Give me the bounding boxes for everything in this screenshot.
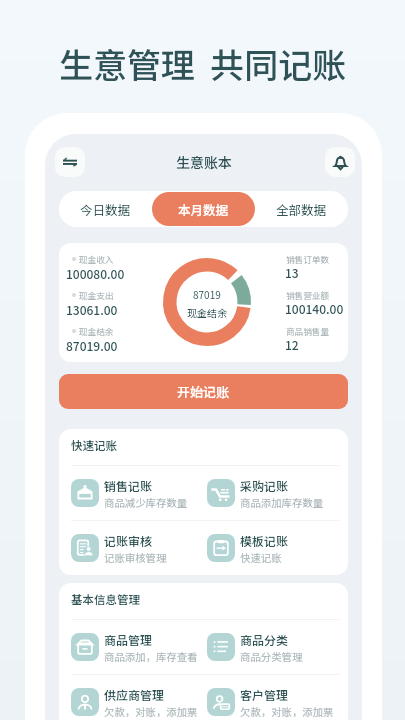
staticText: 商品添加，库存查看: [104, 649, 198, 664]
button[interactable]: 本月数据: [152, 192, 255, 226]
staticText: 现金结余: [187, 305, 227, 319]
staticText: 87019.00: [66, 337, 118, 354]
staticText: 现金支出: [79, 289, 114, 301]
staticText: 现金收入: [79, 253, 114, 265]
staticText: 生意账本: [176, 152, 232, 172]
button[interactable]: 商品分类: [207, 620, 339, 674]
button[interactable]: 记账审核: [71, 521, 203, 575]
staticText: 本月数据: [178, 200, 229, 218]
staticText: 记账审核: [104, 532, 153, 549]
staticText: 12: [285, 336, 299, 353]
staticText: 生意管理 共同记账: [59, 39, 347, 88]
staticText: 商品分类管理: [240, 649, 303, 664]
staticText: 商品管理: [104, 631, 153, 648]
staticText: 采购记账: [240, 477, 289, 494]
button[interactable]: 销售记账: [71, 466, 203, 520]
staticText: 13: [285, 264, 299, 281]
staticText: 商品分类: [240, 631, 289, 648]
button[interactable]: 客户管理: [207, 675, 339, 720]
staticText: 87019: [193, 287, 221, 301]
button[interactable]: 今日数据: [59, 191, 152, 227]
staticText: 开始记账: [177, 382, 230, 401]
button[interactable]: Switch account: [55, 147, 85, 177]
staticText: 商品添加库存数量: [240, 495, 324, 510]
staticText: 记账审核管理: [104, 550, 167, 565]
staticText: 今日数据: [80, 200, 131, 218]
button[interactable]: Notifications: [325, 147, 355, 177]
staticText: 基本信息管理: [71, 591, 140, 608]
staticText: 快速记账: [71, 437, 117, 454]
staticText: 欠款，对账，添加票: [240, 704, 334, 719]
button[interactable]: 采购记账: [207, 466, 339, 520]
staticText: 销售营业额: [286, 289, 329, 301]
staticText: 欠款，对账，添加票: [104, 704, 198, 719]
button[interactable]: 全部数据: [255, 191, 348, 227]
button[interactable]: 模板记账: [207, 521, 339, 575]
button[interactable]: 供应商管理: [71, 675, 203, 720]
staticText: 商品减少库存数量: [104, 495, 188, 510]
staticText: 模板记账: [240, 532, 289, 549]
staticText: 现金结余: [79, 325, 114, 337]
button[interactable]: 商品管理: [71, 620, 203, 674]
staticText: 供应商管理: [104, 686, 165, 703]
staticText: 销售订单数: [286, 253, 329, 265]
staticText: 100140.00: [285, 300, 344, 317]
staticText: 销售记账: [104, 477, 153, 494]
button[interactable]: 开始记账: [59, 374, 348, 409]
staticText: 客户管理: [240, 686, 289, 703]
staticText: 100080.00: [66, 265, 125, 282]
staticText: 13061.00: [66, 301, 118, 318]
staticText: 商品销售量: [286, 325, 329, 337]
staticText: 快速记账: [240, 550, 282, 565]
staticText: 全部数据: [276, 200, 327, 218]
